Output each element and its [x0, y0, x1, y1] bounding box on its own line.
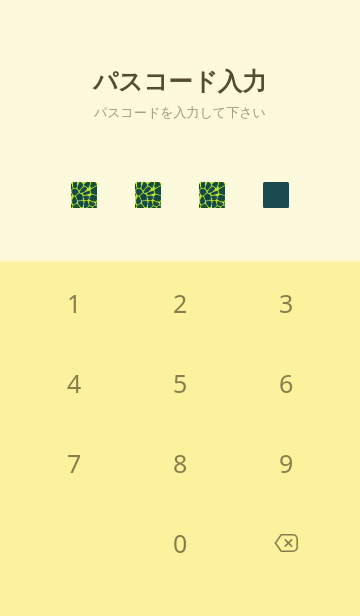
staticText: 5 [173, 366, 188, 400]
button[interactable]: 5 [127, 343, 233, 423]
staticText: パスコード入力 [93, 66, 267, 97]
staticText: パスコードを入力して下さい [94, 104, 266, 120]
button[interactable]: 9 [233, 423, 339, 503]
button[interactable]: 8 [127, 423, 233, 503]
other: Entered passcode digit [135, 182, 161, 208]
staticText: 8 [173, 446, 188, 480]
staticText: 0 [173, 526, 188, 560]
button[interactable]: 0 [127, 503, 233, 583]
staticText: 7 [67, 446, 82, 480]
staticText: 1 [67, 286, 82, 320]
other: Backspace [274, 534, 298, 552]
staticText: 6 [279, 366, 294, 400]
staticText: 9 [279, 446, 294, 480]
staticText: 4 [67, 366, 82, 400]
staticText: 2 [173, 286, 188, 320]
button[interactable]: 4 [21, 343, 127, 423]
other: Empty passcode slot [263, 182, 289, 208]
other: Entered passcode digit [71, 182, 97, 208]
button[interactable]: 2 [127, 263, 233, 343]
other: Entered passcode digit [199, 182, 225, 208]
button[interactable]: Backspace [233, 503, 339, 583]
button[interactable]: 1 [21, 263, 127, 343]
button[interactable]: 3 [233, 263, 339, 343]
button[interactable]: 6 [233, 343, 339, 423]
staticText: 3 [279, 286, 294, 320]
button[interactable]: 7 [21, 423, 127, 503]
